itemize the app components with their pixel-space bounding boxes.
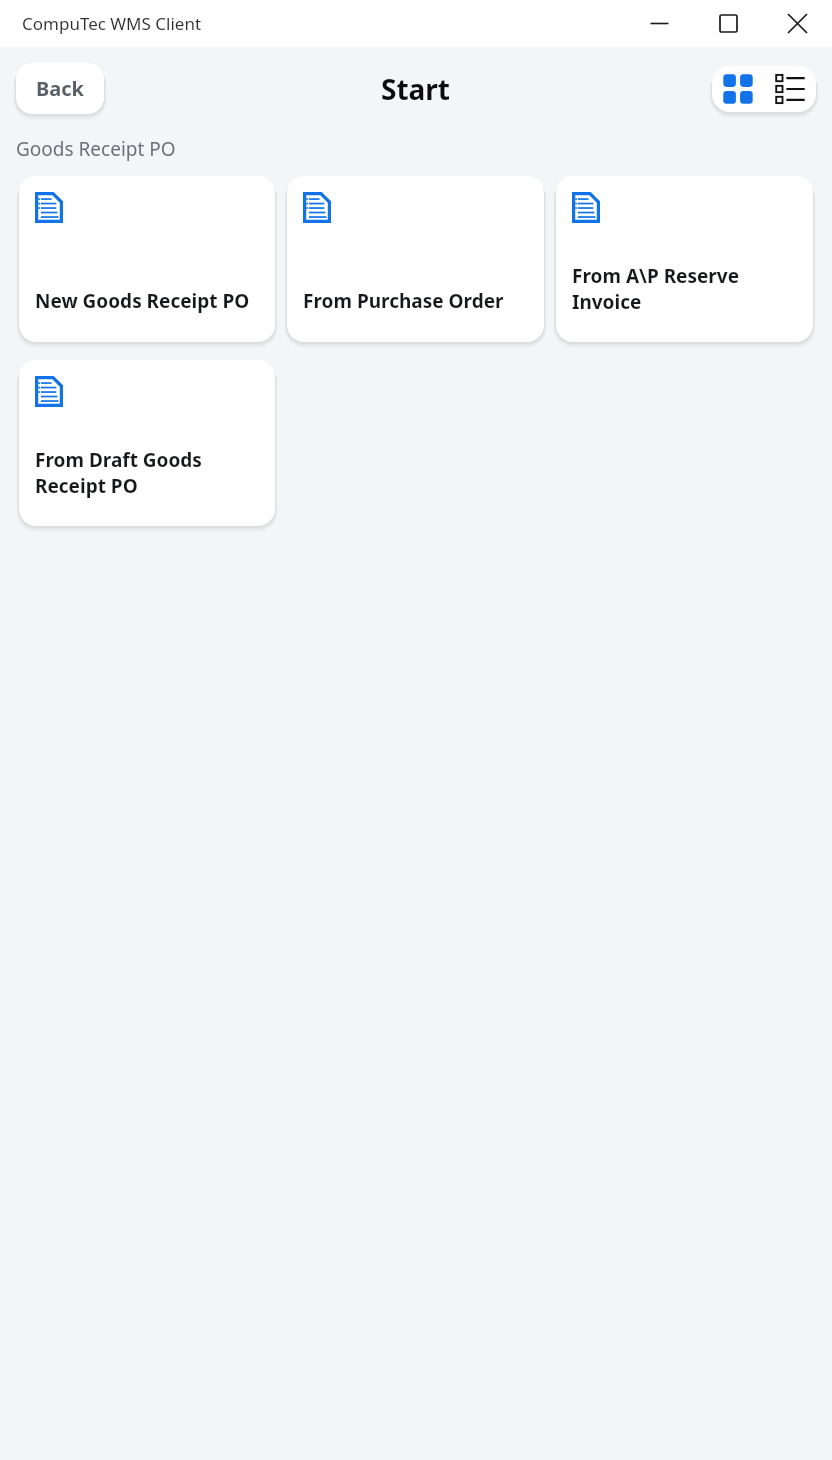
button[interactable]: Grid view [712, 66, 764, 112]
button[interactable]: Close [763, 0, 832, 47]
button[interactable]: From Draft Goods Receipt PO [19, 360, 275, 526]
button[interactable]: From A\P Reserve Invoice [556, 176, 813, 342]
button[interactable]: Maximize [694, 0, 763, 47]
staticText: From A\P Reserve Invoice [572, 263, 801, 314]
staticText: CompuTec WMS Client [22, 12, 202, 35]
staticText: From Purchase Order [303, 288, 504, 314]
staticText: From Draft Goods Receipt PO [35, 447, 263, 498]
staticText: Goods Receipt PO [16, 136, 176, 162]
button[interactable]: Minimize [625, 0, 694, 47]
button[interactable]: Back [16, 63, 104, 114]
staticText: New Goods Receipt PO [35, 288, 250, 314]
button[interactable]: New Goods Receipt PO [19, 176, 275, 342]
button[interactable]: List view [764, 66, 816, 112]
button[interactable]: From Purchase Order [287, 176, 544, 342]
staticText: Back [36, 75, 84, 102]
staticText: Start [381, 70, 451, 108]
